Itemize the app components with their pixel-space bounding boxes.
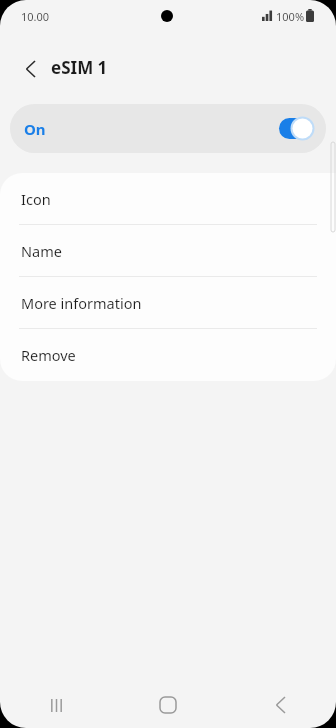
- staticText: Name: [21, 241, 62, 261]
- button[interactable]: Toggle eSIM on: [279, 118, 313, 139]
- staticText: Icon: [21, 189, 51, 209]
- button[interactable]: Back: [224, 682, 336, 728]
- button[interactable]: Home: [112, 682, 224, 728]
- staticText: Remove: [21, 345, 76, 365]
- button[interactable]: Back: [15, 54, 45, 84]
- button[interactable]: Remove: [0, 329, 336, 381]
- button[interactable]: On: [10, 104, 326, 153]
- button[interactable]: More information: [0, 277, 336, 329]
- staticText: More information: [21, 293, 142, 313]
- staticText: On: [24, 119, 46, 139]
- button[interactable]: Name: [0, 225, 336, 277]
- staticText: 10.00: [21, 9, 50, 24]
- staticText: 100%: [276, 9, 305, 24]
- staticText: eSIM 1: [51, 56, 108, 79]
- button[interactable]: Recents: [0, 682, 112, 728]
- button[interactable]: Icon: [0, 173, 336, 225]
